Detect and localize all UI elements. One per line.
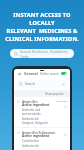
staticText: Search: [25, 82, 36, 86]
staticText: Antibacterials: [22, 144, 39, 148]
staticText: Online search: [40, 72, 59, 76]
staticText: Show popular: [45, 92, 64, 96]
button[interactable]: Ampicillin: [14, 97, 70, 127]
button[interactable]: Clear: [62, 83, 65, 86]
staticText: Local use: [56, 99, 67, 102]
button[interactable]: Search Medicines, Guidelines, Tools: [10, 49, 74, 58]
staticText: Antibiotic and antimicrobials: [22, 108, 56, 116]
staticText: Analgesic, Antipyretic: [22, 121, 49, 125]
staticText: Ampicillin/Sulbactam: [22, 130, 56, 134]
button[interactable]: Show popular: [45, 92, 67, 96]
staticText: General: [24, 71, 38, 76]
staticText: INSTANT ACCESS TO LOCALLY RELEVANT MEDIC…: [4, 11, 80, 43]
staticText: Search Medicines, Guidelines, Tools: [20, 49, 70, 58]
staticText: Active ingredient: [22, 134, 50, 138]
button[interactable]: Online search toggle: [61, 72, 67, 75]
button[interactable]: Ampicillin/Sulbactam: [14, 128, 70, 150]
staticText: Combination: [22, 139, 39, 143]
staticText: Ampicillin: [22, 99, 38, 103]
staticText: Active ingredient: [22, 103, 50, 107]
button[interactable]: Search: [17, 80, 67, 88]
staticText: Antibacterials: [22, 117, 39, 121]
button[interactable]: Back: [17, 71, 22, 76]
